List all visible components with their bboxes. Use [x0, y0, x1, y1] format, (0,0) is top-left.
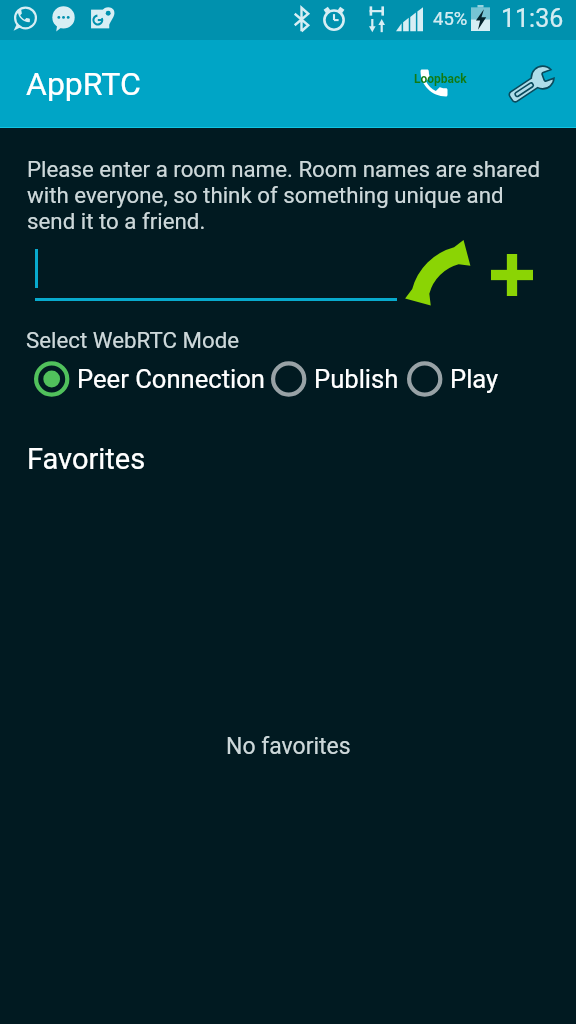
button[interactable]: Play: [403, 357, 504, 401]
button[interactable]: Publish: [267, 357, 404, 401]
staticText: Select WebRTC Mode: [26, 327, 240, 353]
staticText: No favorites: [226, 733, 351, 760]
staticText: AppRTC: [26, 65, 141, 103]
button[interactable]: Connect to room: [402, 240, 472, 310]
button[interactable]: Add favorite: [477, 239, 547, 309]
staticText: 45%: [433, 8, 468, 30]
staticText: Peer Connection: [77, 364, 265, 394]
staticText: Publish: [314, 364, 399, 394]
staticText: Play: [450, 364, 499, 394]
button[interactable]: Loopback call: [398, 50, 466, 118]
button[interactable]: Settings: [493, 50, 561, 118]
staticText: 11:36: [501, 4, 564, 33]
staticText: Please enter a room name. Room names are…: [27, 156, 543, 234]
staticText: Favorites: [27, 442, 146, 476]
button[interactable]: Peer Connection: [30, 357, 270, 401]
staticText: Loopback: [414, 72, 467, 86]
